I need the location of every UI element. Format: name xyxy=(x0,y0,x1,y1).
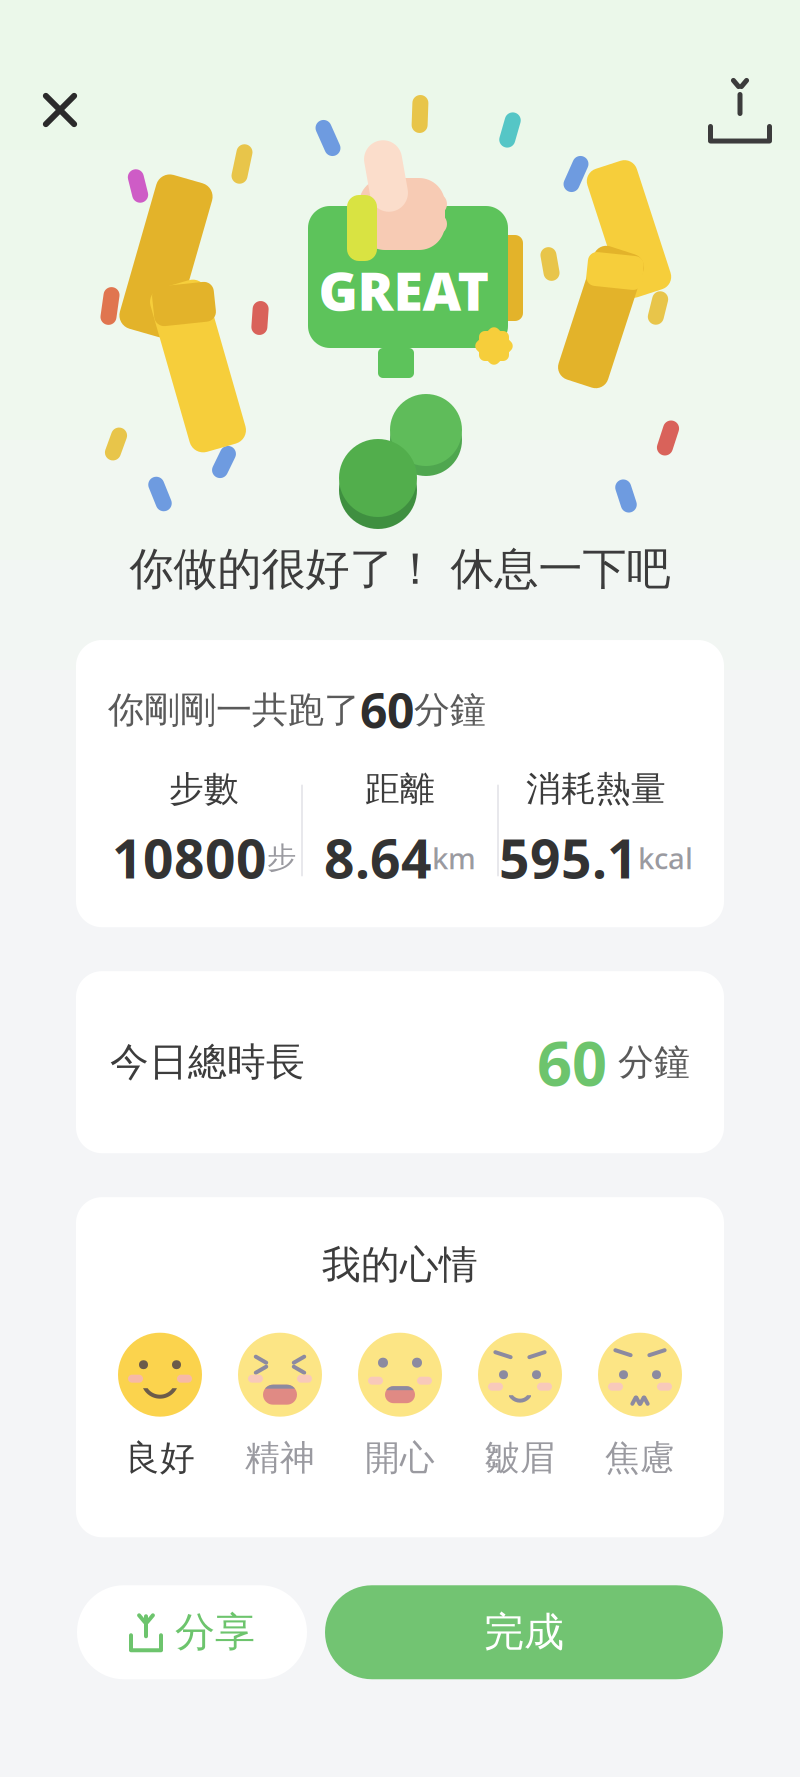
button[interactable]: 完成 xyxy=(325,1585,723,1679)
button[interactable]: 皺眉 xyxy=(460,1329,580,1479)
staticText: 完成 xyxy=(484,1608,564,1657)
staticText: 60 xyxy=(537,1021,607,1103)
staticText: 分鐘 xyxy=(607,1040,690,1084)
staticText: 消耗熱量 xyxy=(526,768,666,810)
staticText: 今日總時長 xyxy=(110,1038,305,1086)
button[interactable]: 精神 xyxy=(220,1329,340,1479)
staticText: km xyxy=(432,838,476,877)
staticText: 開心 xyxy=(365,1437,435,1479)
staticText: 精神 xyxy=(245,1437,315,1479)
staticText: 皺眉 xyxy=(485,1437,555,1479)
staticText: 距離 xyxy=(365,768,435,810)
staticText: 步 xyxy=(267,840,296,876)
staticText: 8.64 xyxy=(324,822,432,893)
staticText: 你剛剛一共跑了 xyxy=(108,688,360,732)
staticText: 你做的很好了！ 休息一下吧 xyxy=(129,542,670,596)
staticText: GREAT xyxy=(318,255,489,325)
staticText: 60 xyxy=(360,678,414,742)
staticText: 10800 xyxy=(112,822,267,893)
button[interactable]: Close xyxy=(28,78,92,142)
staticText: 步數 xyxy=(169,768,239,810)
staticText: kcal xyxy=(638,838,693,877)
staticText: 焦慮 xyxy=(605,1437,675,1479)
button[interactable]: 開心 xyxy=(340,1329,460,1479)
button[interactable]: 分享 xyxy=(77,1585,307,1679)
staticText: 分享 xyxy=(175,1608,255,1657)
button[interactable]: Share xyxy=(708,78,772,142)
button[interactable]: 焦慮 xyxy=(580,1329,700,1479)
staticText: 595.1 xyxy=(499,822,638,893)
staticText: 分鐘 xyxy=(414,688,486,732)
staticText: 良好 xyxy=(125,1437,195,1479)
staticText: 我的心情 xyxy=(322,1241,478,1289)
button[interactable]: 良好 xyxy=(100,1329,220,1479)
